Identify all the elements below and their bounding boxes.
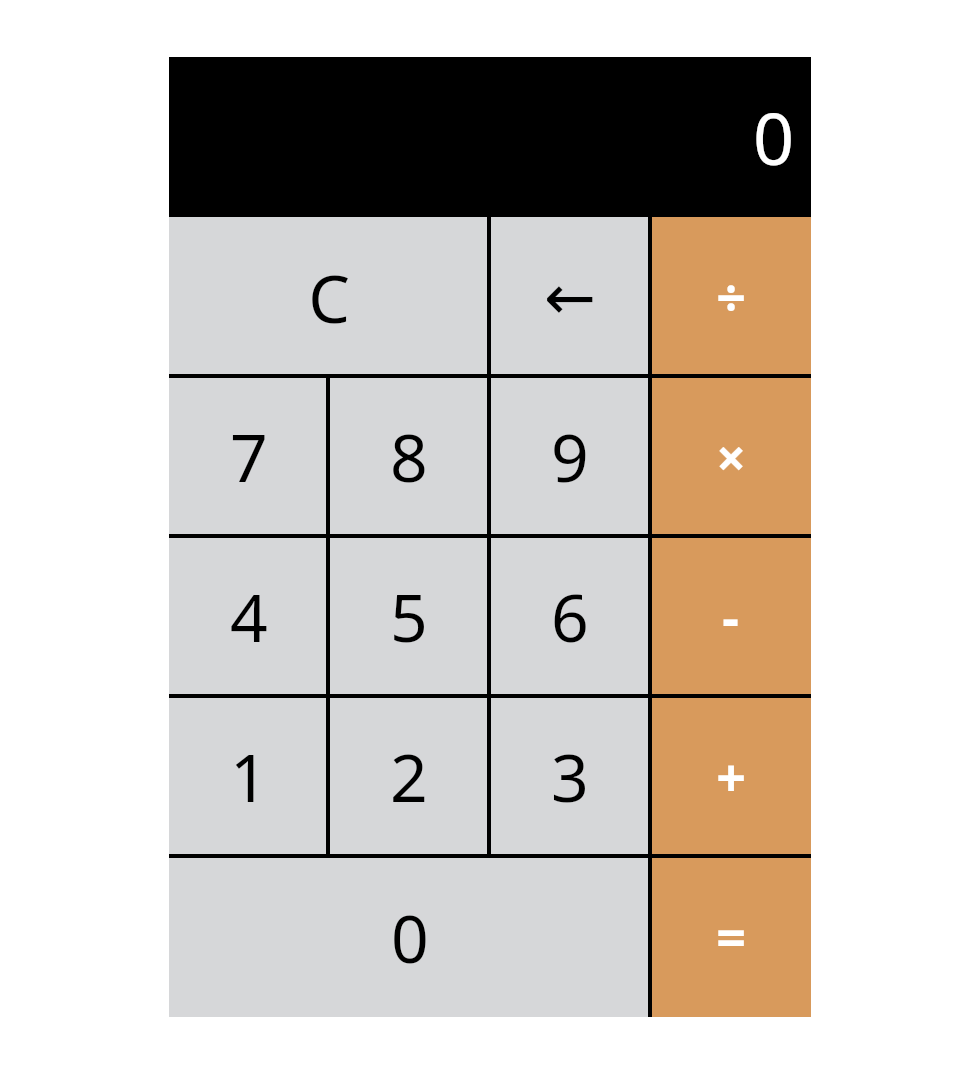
staticText: 9	[551, 411, 589, 501]
staticText: 2	[390, 731, 428, 821]
staticText: ÷	[716, 261, 746, 332]
button[interactable]: Plus	[650, 696, 811, 856]
button[interactable]: 8	[328, 376, 490, 536]
button[interactable]: Multiply	[650, 376, 811, 536]
button[interactable]: 2	[328, 696, 490, 856]
staticText: 8	[390, 411, 428, 501]
staticText: =	[716, 901, 746, 972]
button[interactable]: 6	[489, 536, 650, 696]
button[interactable]: C	[169, 217, 489, 376]
staticText: 6	[551, 571, 589, 661]
staticText: 0	[753, 88, 795, 186]
button[interactable]: Minus	[650, 536, 811, 696]
staticText: ←	[544, 261, 596, 333]
staticText: 5	[390, 571, 428, 661]
staticText: 1	[230, 731, 268, 821]
button[interactable]: 7	[169, 376, 328, 536]
staticText: -	[722, 581, 739, 652]
button[interactable]: 5	[328, 536, 490, 696]
button[interactable]: Equals	[650, 856, 811, 1017]
button[interactable]: 0	[169, 856, 650, 1017]
button[interactable]: Divide	[650, 217, 811, 376]
staticText: 4	[230, 571, 268, 661]
staticText: ×	[716, 421, 746, 492]
button[interactable]: 4	[169, 536, 328, 696]
button[interactable]: 1	[169, 696, 328, 856]
staticText: 0	[391, 892, 429, 982]
staticText: 7	[230, 411, 268, 501]
button[interactable]: Backspace	[489, 217, 650, 376]
button[interactable]: 9	[489, 376, 650, 536]
button[interactable]: 0	[169, 57, 811, 217]
staticText: +	[716, 741, 746, 812]
staticText: 3	[551, 731, 589, 821]
button[interactable]: 3	[489, 696, 650, 856]
staticText: C	[308, 252, 350, 342]
